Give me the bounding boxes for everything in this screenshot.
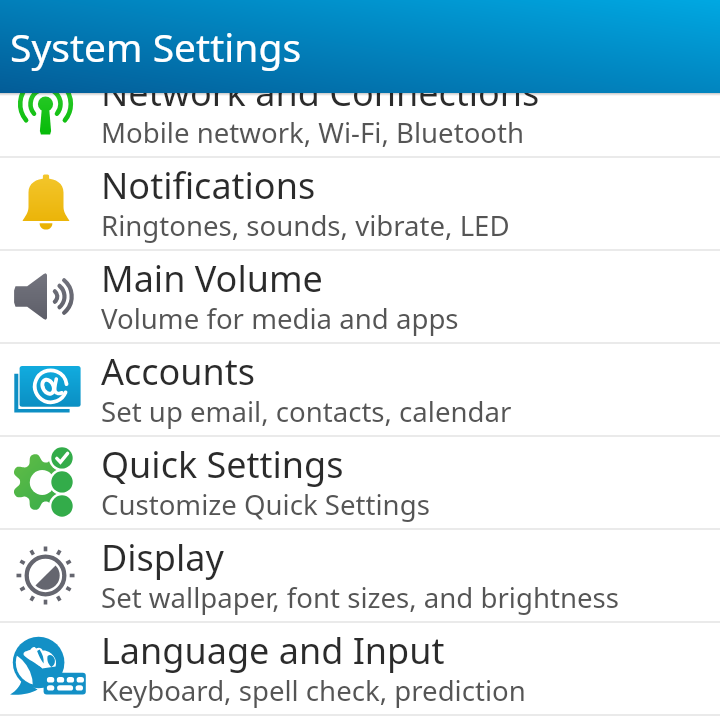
staticText: Customize Quick Settings [101,485,430,523]
staticText: Language and Input [101,626,445,675]
staticText: Volume for media and apps [101,299,459,337]
button[interactable]: Display [0,529,720,622]
staticText: System Settings [10,20,302,73]
staticText: Mobile network, Wi-Fi, Bluetooth [101,113,525,151]
staticText: Set wallpaper, font sizes, and brightnes… [101,578,620,616]
button[interactable]: Notifications [0,157,720,250]
button[interactable]: Network and Connections [0,64,720,157]
staticText: Display [101,533,224,582]
staticText: Accounts [101,347,256,396]
other: System Settings [0,0,720,93]
staticText: Keyboard, spell check, prediction [101,671,526,709]
button[interactable]: Language and Input [0,622,720,715]
button[interactable]: Main Volume [0,250,720,343]
staticText: Set up email, contacts, calendar [101,392,512,430]
staticText: Notifications [101,161,316,210]
staticText: Quick Settings [101,440,344,489]
staticText: Network and Connections [101,68,540,117]
button[interactable]: Accounts [0,343,720,436]
staticText: Ringtones, sounds, vibrate, LED [101,206,510,244]
staticText: Main Volume [101,254,323,303]
button[interactable]: Quick Settings [0,436,720,529]
